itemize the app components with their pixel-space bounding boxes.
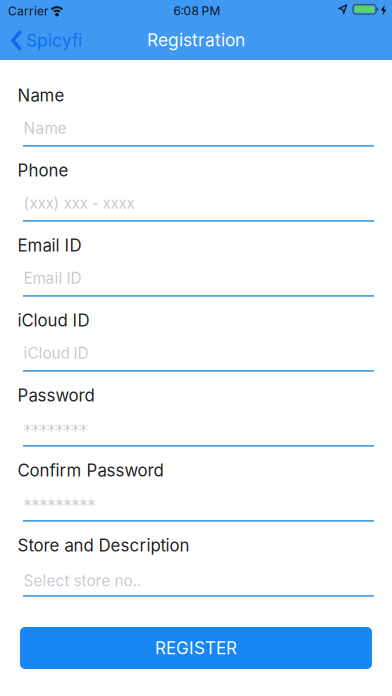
staticText: ********* (23, 495, 95, 516)
staticText: iCloud ID (17, 310, 89, 331)
button[interactable]: Spicyfi (11, 29, 89, 53)
staticText: Registration (147, 29, 245, 50)
staticText: REGISTER (155, 638, 237, 658)
staticText: Name (17, 85, 64, 106)
button[interactable]: ********* (23, 493, 374, 523)
staticText: 6:08 PM (173, 4, 220, 18)
button[interactable]: ******** (23, 418, 374, 448)
staticText: Carrier (8, 4, 49, 18)
staticText: Email ID (17, 235, 81, 256)
button[interactable]: Email ID (23, 268, 374, 298)
staticText: Spicyfi (26, 30, 82, 51)
staticText: Password (17, 385, 94, 406)
staticText: Phone (17, 160, 68, 181)
staticText: Confirm Password (17, 460, 163, 481)
staticText: Email ID (23, 269, 81, 287)
button[interactable]: REGISTER (20, 627, 372, 669)
staticText: iCloud ID (23, 344, 88, 362)
button[interactable]: Name (23, 118, 374, 148)
button[interactable]: Select store no.. (23, 568, 374, 598)
staticText: Name (23, 119, 66, 137)
staticText: Select store no.. (23, 571, 140, 590)
staticText: (xxx) xxx - xxxx (23, 194, 134, 212)
button[interactable]: iCloud ID (23, 343, 374, 373)
staticText: Store and Description (17, 535, 189, 556)
button[interactable]: (xxx) xxx - xxxx (23, 193, 374, 223)
staticText: ******** (23, 420, 87, 441)
